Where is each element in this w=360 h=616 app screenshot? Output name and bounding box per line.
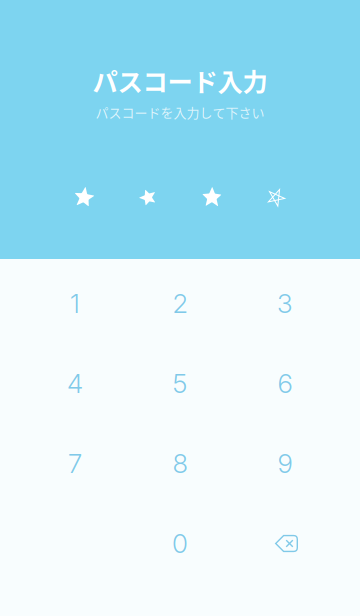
staticText: 9 <box>277 448 292 479</box>
staticText: パスコードを入力して下さい <box>95 103 264 121</box>
button[interactable]: 2 <box>127 263 232 343</box>
button[interactable]: 8 <box>127 423 232 503</box>
button[interactable]: 削除 <box>232 503 337 583</box>
button[interactable]: 1 <box>22 263 127 343</box>
staticText: 4 <box>67 368 83 399</box>
staticText: 3 <box>277 288 293 319</box>
button[interactable]: 5 <box>127 343 232 423</box>
staticText: 1 <box>70 288 80 319</box>
staticText: 7 <box>68 448 82 479</box>
staticText: 5 <box>172 368 187 399</box>
button[interactable]: 9 <box>232 423 337 503</box>
staticText: パスコード入力 <box>92 62 267 99</box>
staticText: 0 <box>172 528 188 559</box>
button[interactable]: 7 <box>22 423 127 503</box>
button[interactable]: 6 <box>232 343 337 423</box>
button[interactable]: 3 <box>232 263 337 343</box>
button[interactable]: 0 <box>127 503 232 583</box>
staticText: 8 <box>172 448 187 479</box>
button[interactable]: 4 <box>22 343 127 423</box>
staticText: 2 <box>172 288 187 319</box>
staticText: 6 <box>277 368 292 399</box>
